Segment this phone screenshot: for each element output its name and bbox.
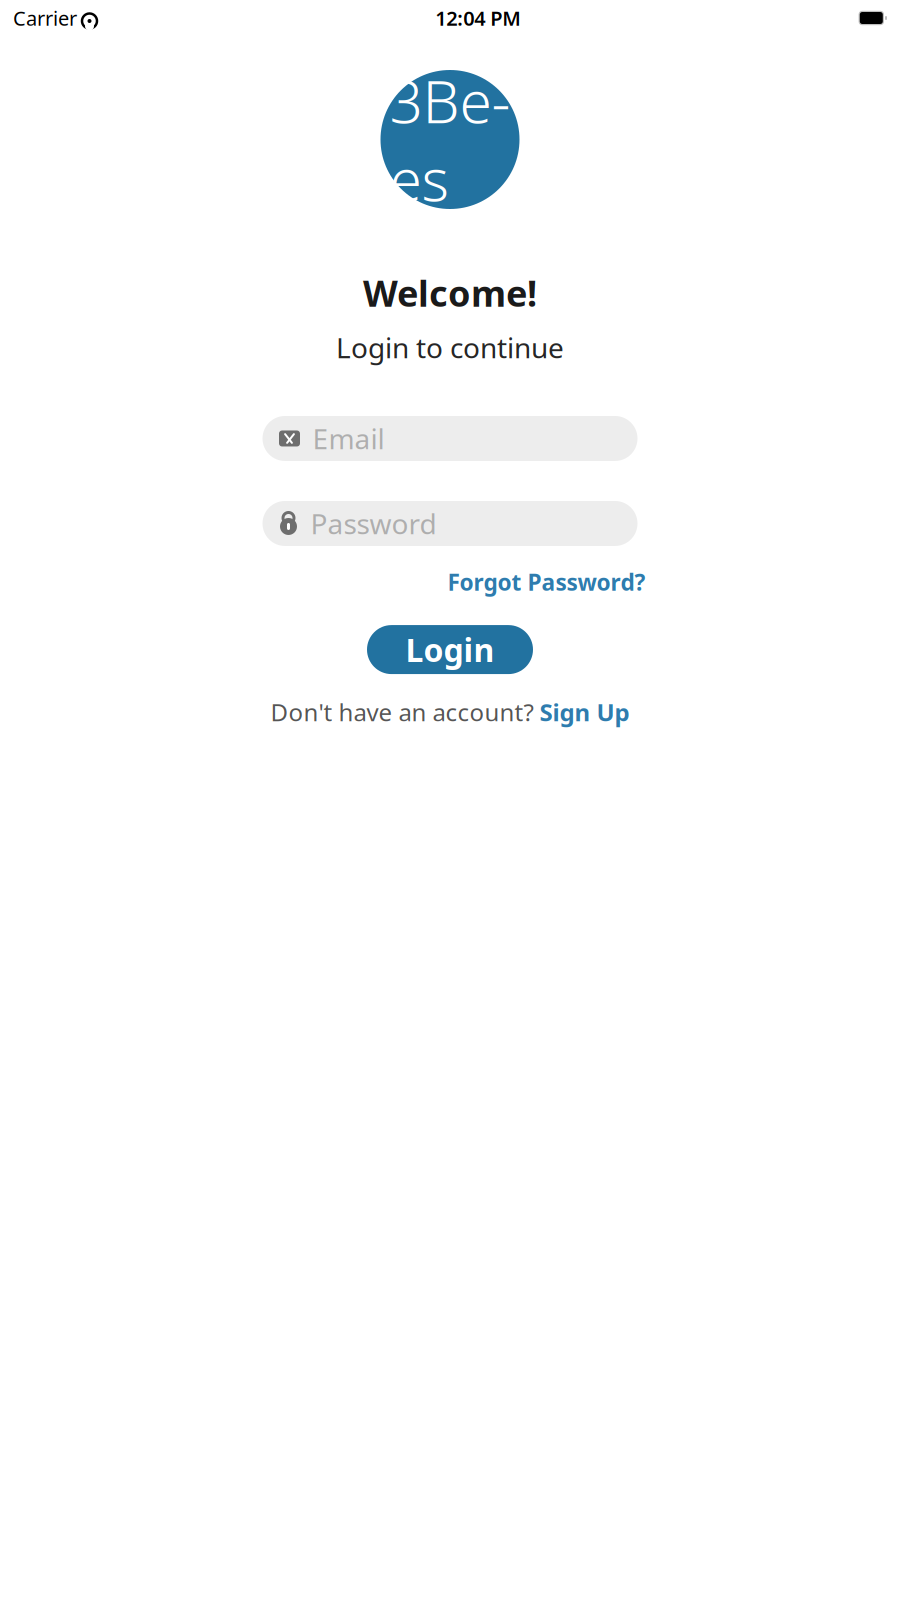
button[interactable]: Forgot Password? [447,567,645,597]
staticText: Login [405,628,494,671]
button[interactable]: Don't have an account? [270,696,629,728]
staticText: Don't have an account? [270,696,533,728]
staticText: 12:04 PM [435,5,521,31]
staticText: Email [312,420,384,457]
button[interactable]: Password [262,501,637,546]
staticText: Welcome! [363,269,537,317]
button[interactable]: Login [367,625,533,674]
button[interactable]: Email [262,416,637,461]
staticText: Carrier [13,5,77,31]
staticText: Sign Up [539,696,629,728]
staticText: Login to continue [336,329,564,366]
staticText: Forgot Password? [447,567,645,597]
staticText: 3Bees [389,62,510,217]
staticText: Password [310,505,436,542]
